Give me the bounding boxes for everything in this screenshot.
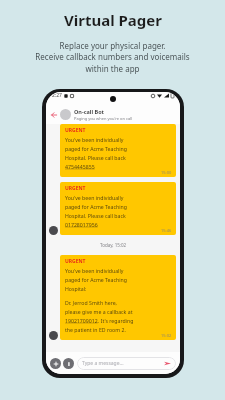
staticText: 01728017956 bbox=[65, 221, 98, 228]
staticText: You've been individually bbox=[65, 194, 124, 201]
staticText: i bbox=[68, 360, 70, 368]
button[interactable]: URGENT bbox=[60, 255, 176, 340]
staticText: Hospital. Please call back bbox=[65, 212, 126, 219]
staticText: URGENT bbox=[65, 127, 86, 134]
staticText: 4754445855 bbox=[65, 163, 95, 170]
staticText: On-call Bot bbox=[74, 108, 105, 115]
staticText: 15:02 bbox=[161, 333, 172, 338]
staticText: paged for Acme Teaching bbox=[65, 203, 127, 210]
staticText: Virtual Pager bbox=[64, 10, 162, 30]
staticText: 19021709012 bbox=[65, 317, 98, 324]
staticText: Type a message... bbox=[82, 360, 124, 367]
button[interactable]: Back bbox=[48, 109, 59, 120]
staticText: Today, 15:02 bbox=[100, 242, 127, 248]
staticText: 2:27 bbox=[52, 92, 62, 99]
staticText: 15:00 bbox=[161, 170, 172, 175]
button[interactable]: Add attachment bbox=[50, 358, 61, 369]
staticText: URGENT bbox=[65, 185, 86, 192]
staticText: please give me a callback at bbox=[65, 308, 133, 315]
staticText: paged for Acme Teaching bbox=[65, 276, 127, 283]
staticText: Hospital. Please call back bbox=[65, 154, 126, 161]
button[interactable]: URGENT bbox=[60, 124, 176, 177]
staticText: paged for Acme Teaching bbox=[65, 145, 127, 152]
button[interactable]: Send bbox=[164, 360, 171, 367]
staticText: You've been individually bbox=[65, 136, 124, 143]
staticText: 15:46 bbox=[161, 228, 172, 233]
staticText: Hospital: bbox=[65, 285, 87, 292]
button[interactable]: Info bbox=[63, 358, 74, 369]
staticText: URGENT bbox=[65, 258, 86, 265]
staticText: the patient in ED room 2. bbox=[65, 326, 126, 333]
button[interactable]: URGENT bbox=[60, 182, 176, 235]
staticText: Replace your physical pager. Receive cal… bbox=[35, 40, 190, 75]
staticText: Dr. Jerrod Smith here, bbox=[65, 299, 117, 306]
button[interactable]: Type a message... bbox=[77, 357, 176, 370]
staticText: Paging you when you're on call bbox=[74, 116, 133, 121]
staticText: . It's regarding bbox=[98, 317, 134, 324]
staticText: You've been individually bbox=[65, 267, 124, 274]
